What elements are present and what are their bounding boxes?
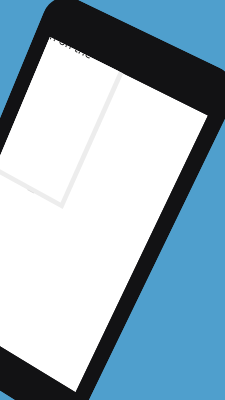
button[interactable]: about the heart, never leaving one, by n… [0, 37, 119, 203]
staticText: about the heart, never leaving one, by n… [42, 37, 115, 89]
